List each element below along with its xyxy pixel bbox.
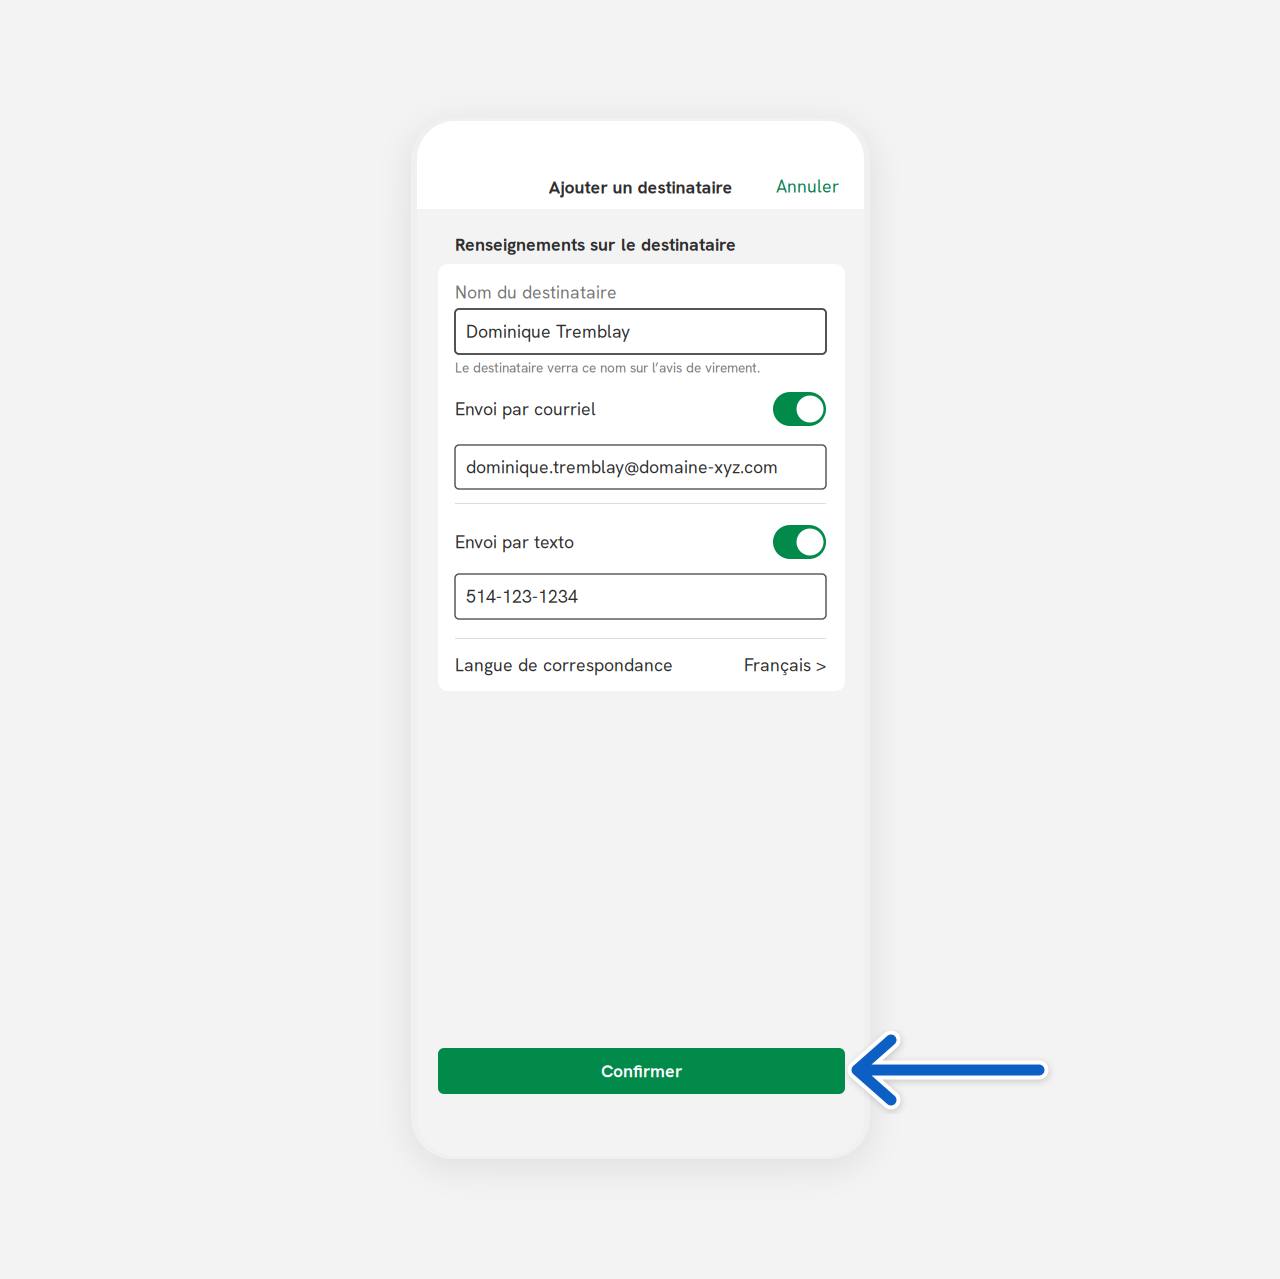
staticText: dominique.tremblay@domaine-xyz.com: [466, 455, 778, 478]
staticText: Langue de correspondance: [455, 653, 673, 676]
staticText: Ajouter un destinataire: [548, 176, 732, 199]
button[interactable]: Activé: [773, 392, 826, 426]
staticText: Dominique Tremblay: [466, 320, 630, 343]
staticText: Envoi par texto: [455, 530, 574, 553]
staticText: Envoi par courriel: [455, 397, 596, 420]
staticText: Renseignements sur le destinataire: [455, 233, 736, 256]
staticText: Français >: [744, 653, 826, 676]
staticText: Confirmer: [601, 1059, 682, 1082]
staticText: Le destinataire verra ce nom sur l’avis …: [455, 359, 760, 376]
button[interactable]: Annuler: [768, 168, 847, 205]
staticText: 514-123-1234: [466, 585, 578, 608]
staticText: Nom du destinataire: [455, 281, 617, 304]
staticText: Annuler: [776, 175, 839, 198]
button[interactable]: Langue de correspondance: [455, 652, 826, 678]
button[interactable]: Confirmer: [438, 1048, 845, 1094]
button[interactable]: Activé: [773, 525, 826, 559]
